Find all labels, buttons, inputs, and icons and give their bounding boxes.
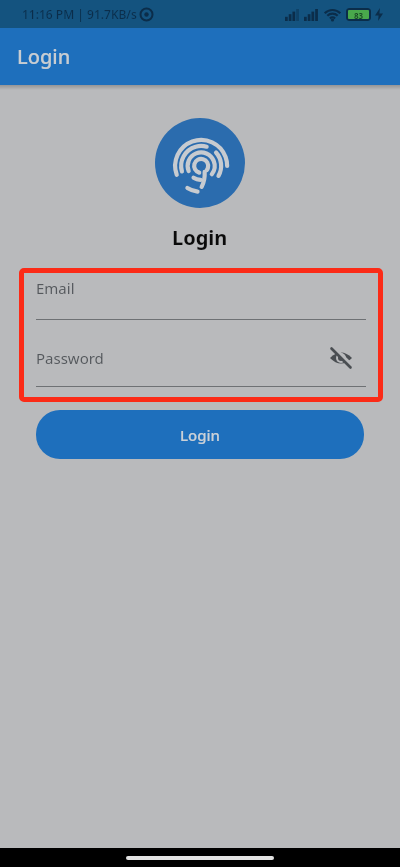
staticText: Password <box>36 348 104 368</box>
staticText: Email <box>36 278 75 298</box>
button[interactable]: Password <box>36 346 366 370</box>
staticText: Login <box>172 224 228 251</box>
button[interactable]: Login <box>36 410 364 459</box>
button[interactable]: Email <box>36 278 366 298</box>
staticText: Login <box>17 43 71 70</box>
staticText: 11:16 PM | 91.7KB/s <box>22 6 137 22</box>
staticText: 83 <box>354 10 364 19</box>
staticText: Login <box>180 425 220 445</box>
